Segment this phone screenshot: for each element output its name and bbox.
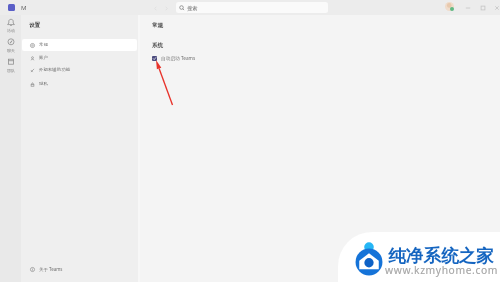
staticText: 搜索 xyxy=(187,5,198,12)
staticText: 账户 xyxy=(39,55,48,61)
staticText: M xyxy=(21,4,27,12)
staticText: 隐私 xyxy=(39,81,48,87)
staticText: 关于 Teams xyxy=(39,266,63,272)
staticText: 活动 xyxy=(7,28,15,33)
staticText: 设置 xyxy=(29,22,41,29)
staticText: 常规 xyxy=(39,42,48,48)
staticText: 纯净系统之家 xyxy=(388,245,494,267)
button[interactable]: 聊天 xyxy=(0,37,21,53)
button[interactable]: 外观和辅助功能 xyxy=(22,64,137,76)
staticText: 外观和辅助功能 xyxy=(39,67,71,73)
button[interactable]: 活动 xyxy=(0,17,21,33)
staticText: 自动启动 Teams xyxy=(161,55,196,61)
staticText: 团队 xyxy=(7,68,15,73)
staticText: 聊天 xyxy=(7,48,15,53)
button[interactable]: Maximize xyxy=(478,3,488,13)
button[interactable]: Teams logo xyxy=(8,4,15,11)
staticText: 系统 xyxy=(152,42,164,49)
button[interactable]: 隐私 xyxy=(22,78,137,90)
button[interactable]: Close xyxy=(492,3,500,13)
button[interactable]: 团队 xyxy=(0,57,21,73)
button[interactable]: Profile xyxy=(445,2,454,11)
button[interactable]: Minimize xyxy=(463,3,473,13)
button[interactable]: 搜索 xyxy=(176,2,328,13)
button[interactable]: 常规 xyxy=(22,39,137,51)
staticText: www.kzmyhome.com xyxy=(385,263,499,277)
staticText: 常规 xyxy=(152,22,164,29)
button[interactable]: 自动启动 Teams xyxy=(152,54,196,62)
button[interactable]: 账户 xyxy=(22,52,137,64)
button[interactable]: 关于 Teams xyxy=(22,263,137,275)
